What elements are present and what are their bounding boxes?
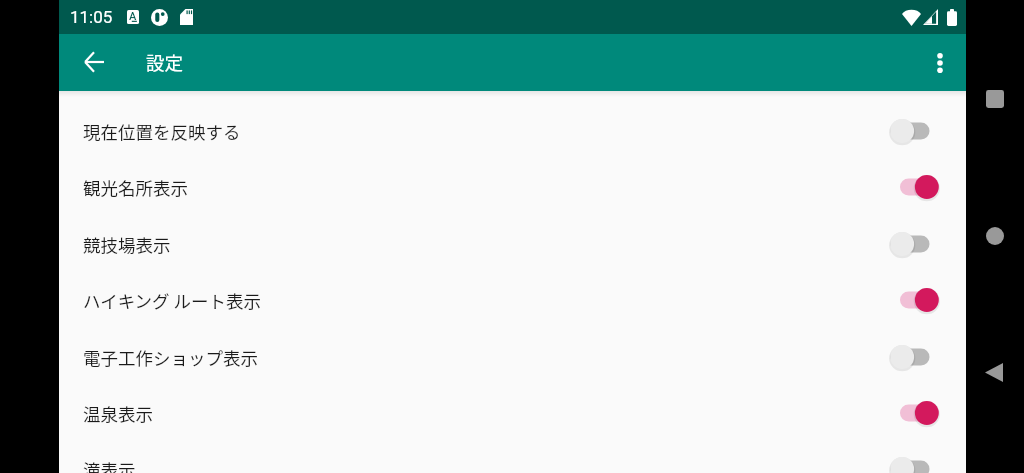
staticText: 温泉表示 (83, 401, 153, 426)
staticText: 電子工作ショップ表示 (83, 345, 258, 370)
button[interactable]: Recent apps (981, 85, 1009, 113)
button[interactable]: Back (980, 358, 1008, 386)
button[interactable]: ハイキング ルート表示 (59, 272, 966, 328)
button[interactable]: 滝表示 (59, 441, 966, 473)
button[interactable]: 電子工作ショップ表示 (59, 329, 966, 385)
button[interactable]: 現在位置を反映する (59, 103, 966, 159)
staticText: 11:05 (70, 7, 113, 27)
button[interactable]: Back (66, 34, 122, 90)
staticText: ハイキング ルート表示 (83, 288, 262, 313)
staticText: 競技場表示 (83, 232, 171, 257)
staticText: 現在位置を反映する (83, 119, 241, 144)
button[interactable]: Home (981, 222, 1009, 250)
staticText: A (129, 10, 137, 23)
staticText: 滝表示 (83, 457, 136, 473)
button[interactable]: 競技場表示 (59, 216, 966, 272)
button[interactable]: 温泉表示 (59, 385, 966, 441)
staticText: 設定 (146, 49, 184, 76)
staticText: 観光名所表示 (83, 175, 188, 200)
button[interactable]: More options (912, 35, 968, 91)
button[interactable]: 観光名所表示 (59, 159, 966, 215)
